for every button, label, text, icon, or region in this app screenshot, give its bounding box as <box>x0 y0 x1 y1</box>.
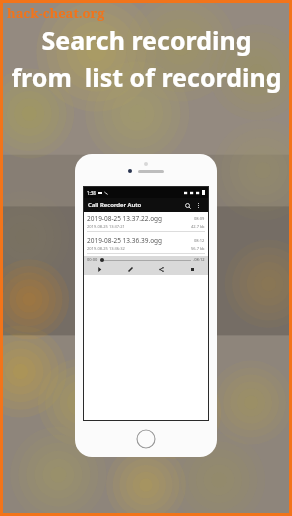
staticText: 08:12 <box>194 238 205 243</box>
staticText: Search recording <box>41 23 252 57</box>
staticText: 2019-08-25 13.37.22.ogg <box>87 214 194 223</box>
button[interactable]: Play <box>84 263 115 275</box>
button[interactable]: More options <box>193 200 204 211</box>
staticText: 2019-08-25 13:36:32 <box>87 246 191 251</box>
staticText: 42.7 kb <box>191 224 205 229</box>
staticText: 1:38 <box>87 190 96 196</box>
button[interactable]: Stop <box>177 263 208 275</box>
staticText: 2019-08-25 13.36.39.ogg <box>87 236 194 245</box>
button[interactable]: 2019-08-25 13.37.22.ogg <box>84 212 208 234</box>
button[interactable]: Search <box>182 200 193 211</box>
staticText: 56.7 kb <box>191 246 205 251</box>
button[interactable]: Share <box>146 263 177 275</box>
button[interactable]: 2019-08-25 13.36.39.ogg <box>84 234 208 256</box>
staticText: -08:12 <box>193 257 205 262</box>
staticText: 00:00 <box>87 257 98 262</box>
staticText: Call Recorder Auto <box>88 201 142 209</box>
staticText: 2019-08-25 13:37:21 <box>87 224 191 229</box>
staticText: 08:09 <box>194 216 205 221</box>
button[interactable]: Edit <box>115 263 146 275</box>
staticText: hack-cheat.org <box>7 4 105 22</box>
staticText: from list of recording <box>11 60 282 94</box>
